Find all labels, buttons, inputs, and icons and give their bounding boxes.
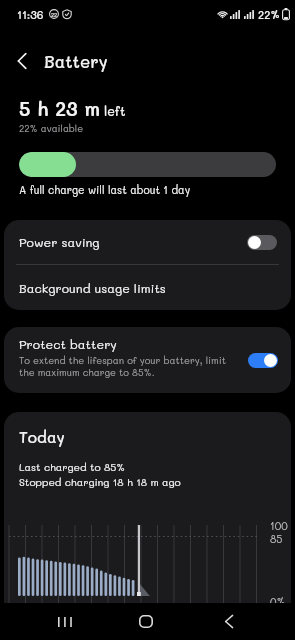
staticText: 11:36 — [17, 7, 44, 21]
button[interactable]: Off — [247, 235, 277, 250]
staticText: A full charge will last about 1 day — [19, 183, 191, 197]
button[interactable]: Protect battery — [4, 327, 291, 393]
staticText: To extend the lifespan of your battery, … — [19, 354, 240, 378]
staticText: Last charged to 85% — [19, 460, 126, 474]
button[interactable]: On — [248, 353, 278, 368]
button[interactable]: Background usage limits — [4, 265, 291, 310]
button[interactable]: Back — [201, 603, 256, 640]
button[interactable]: Recent apps — [37, 603, 92, 640]
staticText: 22 — [51, 11, 58, 18]
staticText: Power saving — [19, 234, 247, 250]
staticText: 85 — [270, 532, 283, 546]
staticText: 5 h 23 m — [19, 96, 100, 121]
staticText: Today — [19, 427, 65, 447]
staticText: Stopped charging 18 h 18 m ago — [19, 475, 181, 489]
button[interactable]: Navigate up — [0, 39, 44, 83]
button[interactable]: Home — [118, 603, 173, 640]
button[interactable]: Power saving — [4, 220, 291, 264]
staticText: Protect battery — [19, 336, 117, 352]
staticText: Battery — [44, 50, 108, 72]
staticText: Background usage limits — [19, 280, 166, 296]
staticText: 100 — [270, 519, 288, 533]
staticText: left — [104, 103, 126, 119]
staticText: 22% — [258, 7, 281, 21]
staticText: 0% — [270, 595, 286, 609]
staticText: 22% available — [19, 122, 84, 134]
